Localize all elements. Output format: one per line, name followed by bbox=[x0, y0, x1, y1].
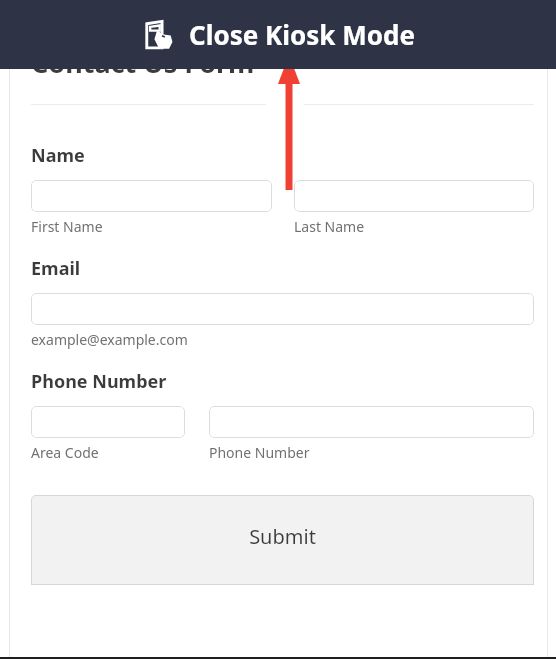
staticText: example@example.com bbox=[31, 330, 188, 349]
staticText: First Name bbox=[31, 217, 103, 236]
staticText: Name bbox=[31, 143, 85, 168]
staticText: Submit bbox=[249, 523, 316, 550]
button[interactable] bbox=[209, 406, 534, 438]
button[interactable]: Submit bbox=[31, 495, 534, 585]
button[interactable]: Close Kiosk Mode bbox=[0, 0, 556, 69]
button[interactable] bbox=[31, 180, 272, 212]
staticText: Last Name bbox=[294, 217, 365, 236]
staticText: Phone Number bbox=[31, 369, 167, 394]
other: Close Kiosk Mode bbox=[141, 18, 175, 52]
staticText: Close Kiosk Mode bbox=[189, 17, 415, 52]
staticText: Email bbox=[31, 256, 81, 281]
staticText: Contact Us Form bbox=[31, 44, 255, 81]
button[interactable] bbox=[294, 180, 534, 212]
staticText: Phone Number bbox=[209, 443, 310, 462]
staticText: Area Code bbox=[31, 443, 99, 462]
button[interactable] bbox=[31, 293, 534, 325]
button[interactable] bbox=[31, 406, 185, 438]
